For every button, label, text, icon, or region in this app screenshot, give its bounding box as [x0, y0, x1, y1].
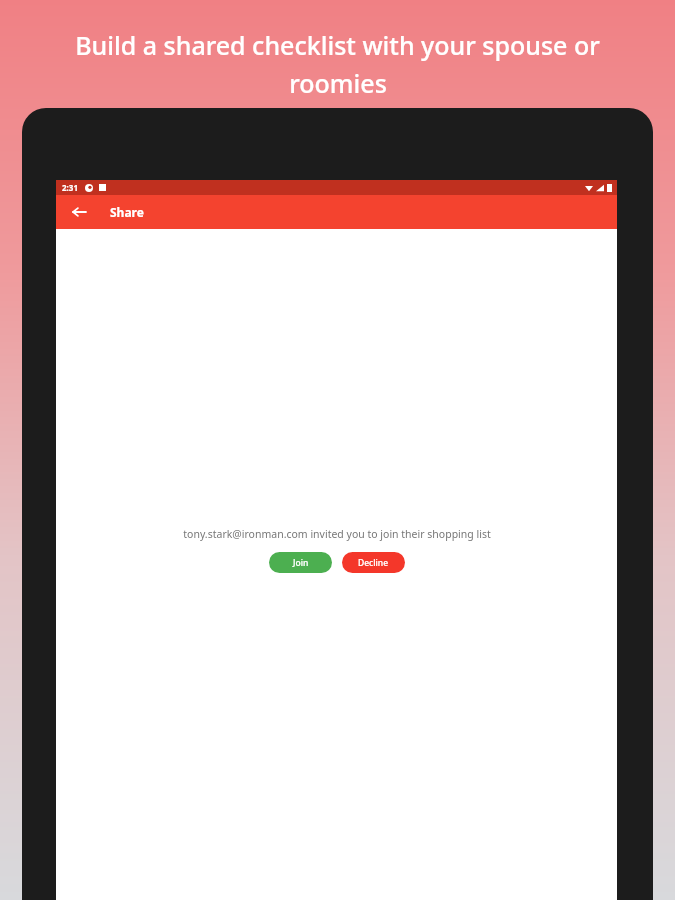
button[interactable]: Decline: [342, 552, 405, 573]
staticText: Share: [110, 204, 144, 220]
button[interactable]: Join: [269, 552, 332, 573]
staticText: tony.stark@ironman.com invited you to jo…: [183, 527, 491, 541]
staticText: roomies: [289, 66, 387, 100]
staticText: 2:31: [62, 182, 78, 193]
staticText: Join: [293, 557, 309, 569]
button[interactable]: Back: [66, 199, 92, 225]
staticText: Decline: [358, 557, 389, 569]
staticText: Build a shared checklist with your spous…: [75, 28, 600, 62]
